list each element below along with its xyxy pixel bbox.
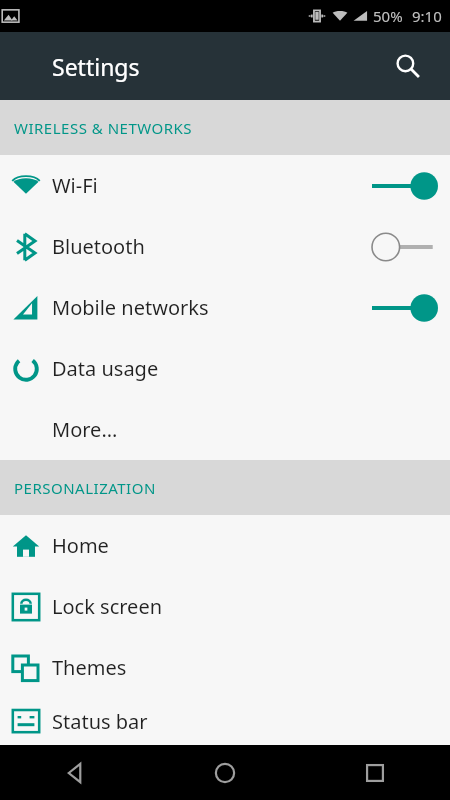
button[interactable]: Search <box>386 44 430 88</box>
staticText: Lock screen <box>52 593 163 620</box>
staticText: Wi-Fi <box>52 172 98 199</box>
staticText: Home <box>52 532 109 559</box>
staticText: More... <box>52 416 118 443</box>
button[interactable]: Home <box>0 515 450 576</box>
staticText: 9:10 <box>412 6 442 26</box>
button[interactable]: Home <box>150 745 300 800</box>
button[interactable]: More... <box>0 399 450 460</box>
button[interactable]: Status bar <box>0 698 450 745</box>
button[interactable]: Back <box>0 745 150 800</box>
staticText: Status bar <box>52 708 148 735</box>
button[interactable]: Bluetooth toggle <box>360 216 450 277</box>
button[interactable]: Bluetooth <box>0 216 450 277</box>
staticText: Mobile networks <box>52 294 209 321</box>
button[interactable]: Mobile networks toggle <box>360 277 450 338</box>
staticText: Themes <box>52 654 127 681</box>
button[interactable]: Themes <box>0 637 450 698</box>
button[interactable]: Wi-Fi toggle <box>360 155 450 216</box>
button[interactable]: Mobile networks <box>0 277 450 338</box>
staticText: Bluetooth <box>52 233 145 260</box>
button[interactable]: Wi-Fi <box>0 155 450 216</box>
staticText: WIRELESS & NETWORKS <box>14 118 193 138</box>
staticText: Data usage <box>52 355 159 382</box>
staticText: Settings <box>52 51 140 82</box>
button[interactable]: Data usage <box>0 338 450 399</box>
button[interactable]: Lock screen <box>0 576 450 637</box>
staticText: 50% <box>373 6 403 26</box>
button[interactable]: Recents <box>300 745 450 800</box>
staticText: PERSONALIZATION <box>14 478 156 498</box>
